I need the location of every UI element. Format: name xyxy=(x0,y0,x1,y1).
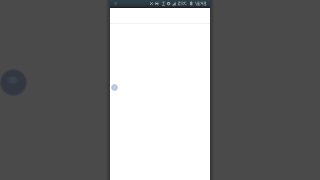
button[interactable]: Action xyxy=(111,84,118,91)
